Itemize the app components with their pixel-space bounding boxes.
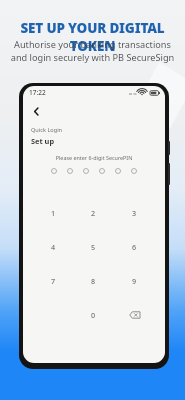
button[interactable]: 4 (33, 230, 73, 264)
staticText: Set up (31, 136, 55, 146)
staticText: 0 (91, 310, 96, 320)
staticText: 1 (51, 208, 56, 218)
button[interactable]: Delete (114, 298, 155, 332)
button[interactable]: 7 (33, 264, 73, 298)
staticText: Authorise your banking transactions and … (0, 38, 185, 64)
button[interactable]: 8 (73, 264, 114, 298)
staticText: 2 (91, 208, 96, 218)
staticText: 9 (132, 276, 137, 286)
button[interactable]: 5 (73, 230, 114, 264)
staticText: 5 (91, 242, 96, 252)
staticText: Quick Login (31, 126, 63, 134)
button[interactable]: 2 (73, 196, 114, 230)
staticText: 3 (132, 208, 137, 218)
button[interactable]: 6 (114, 230, 155, 264)
staticText: 17:22 (29, 88, 46, 97)
staticText: 8 (91, 276, 96, 286)
staticText: SET UP YOUR DIGITAL TOKEN (0, 19, 185, 55)
staticText: 7 (51, 276, 56, 286)
button[interactable]: 0 (73, 298, 114, 332)
button[interactable]: 3 (114, 196, 155, 230)
staticText: 4 (51, 242, 56, 252)
button[interactable]: Back (27, 102, 45, 120)
button[interactable]: 1 (33, 196, 73, 230)
staticText: 6 (132, 242, 137, 252)
staticText: Please enter 6-digit SecurePIN (23, 154, 165, 161)
button[interactable]: 9 (114, 264, 155, 298)
